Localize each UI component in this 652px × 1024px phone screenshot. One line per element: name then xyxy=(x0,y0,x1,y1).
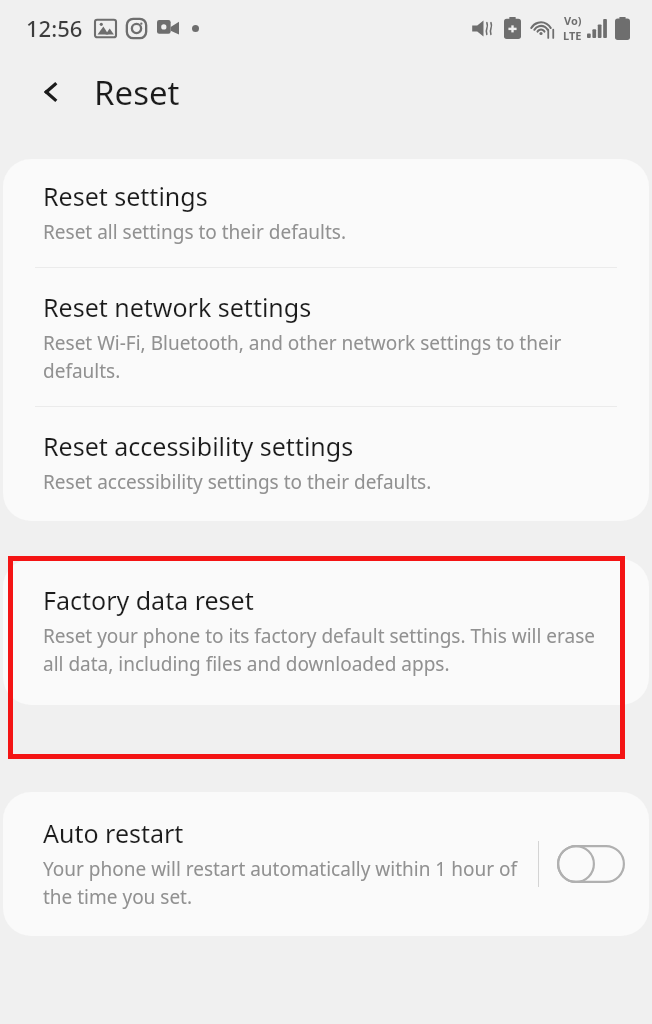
staticText: Reset xyxy=(94,70,180,115)
button[interactable]: Auto restart, off xyxy=(557,844,625,884)
staticText: Reset accessibility settings to their de… xyxy=(43,469,432,495)
staticText: Vo) xyxy=(564,13,582,28)
staticText: Reset settings xyxy=(43,179,208,213)
staticText: Reset your phone to its factory default … xyxy=(43,623,599,677)
staticText: Reset network settings xyxy=(43,290,312,324)
staticText: 12:56 xyxy=(26,13,83,43)
button[interactable]: Auto restart xyxy=(3,792,649,936)
staticText: Auto restart xyxy=(43,816,184,850)
button[interactable]: Back xyxy=(30,70,74,114)
staticText: Reset accessibility settings xyxy=(43,429,354,463)
staticText: Reset Wi-Fi, Bluetooth, and other networ… xyxy=(43,330,599,384)
staticText: Reset all settings to their defaults. xyxy=(43,219,347,245)
staticText: LTE xyxy=(563,28,582,43)
button[interactable]: Reset network settings xyxy=(3,268,649,406)
button[interactable]: Factory data reset xyxy=(3,559,649,705)
button[interactable]: Reset accessibility settings xyxy=(3,407,649,521)
staticText: Factory data reset xyxy=(43,583,254,617)
button[interactable]: Reset settings xyxy=(3,159,649,267)
staticText: Your phone will restart automatically wi… xyxy=(43,856,530,910)
